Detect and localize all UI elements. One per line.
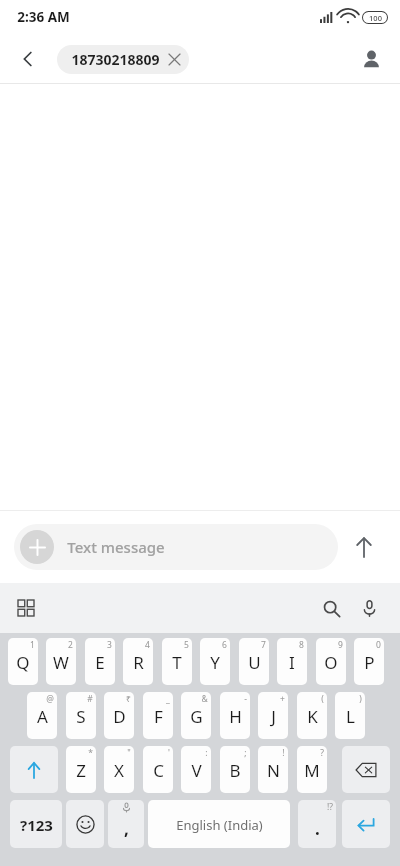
button[interactable]: !? <box>298 800 336 848</box>
button[interactable]: ?123 <box>10 800 62 848</box>
button[interactable]: + <box>258 692 288 739</box>
button[interactable]: ' <box>143 746 173 793</box>
staticText: 4 <box>145 639 150 651</box>
staticText: K <box>307 705 318 728</box>
button[interactable]: _ <box>143 692 173 739</box>
button[interactable]: 8 <box>277 638 307 685</box>
button[interactable]: Contacts <box>351 39 391 79</box>
button[interactable]: , <box>108 800 144 848</box>
button[interactable]: ; <box>220 746 250 793</box>
button[interactable]: & <box>181 692 211 739</box>
button[interactable]: 9 <box>316 638 346 685</box>
staticText: English (India) <box>176 816 263 834</box>
staticText: 18730218809 <box>71 50 160 69</box>
staticText: @ <box>46 693 54 705</box>
staticText: J <box>271 705 276 728</box>
button[interactable]: Search <box>312 589 350 627</box>
other: Remove <box>169 54 180 65</box>
staticText: , <box>124 817 129 840</box>
button[interactable]: 5 <box>162 638 192 685</box>
staticText: 5 <box>184 639 189 651</box>
staticText: * <box>88 747 93 759</box>
staticText: 1 <box>30 639 35 651</box>
button[interactable]: ) <box>335 692 365 739</box>
staticText: F <box>154 705 163 728</box>
button[interactable]: : <box>181 746 211 793</box>
staticText: C <box>153 759 164 782</box>
button[interactable]: 4 <box>123 638 153 685</box>
button[interactable]: 0 <box>354 638 384 685</box>
button[interactable]: Shift <box>10 746 58 793</box>
staticText: ) <box>359 693 362 705</box>
staticText: # <box>87 693 93 705</box>
staticText: Z <box>76 759 86 782</box>
staticText: U <box>248 651 261 674</box>
staticText: I <box>289 651 295 674</box>
staticText: Y <box>210 651 220 674</box>
staticText: !? <box>327 801 333 813</box>
staticText: - <box>244 693 247 705</box>
staticText: O <box>324 651 338 674</box>
staticText: A <box>37 705 48 728</box>
staticText: 0 <box>376 639 381 651</box>
staticText: Q <box>16 651 30 674</box>
button[interactable]: Attach <box>20 530 54 564</box>
staticText: ? <box>320 747 324 759</box>
button[interactable]: 1 <box>8 638 38 685</box>
button[interactable]: Toolbox <box>8 590 44 626</box>
staticText: B <box>229 759 241 782</box>
staticText: P <box>364 651 375 674</box>
staticText: . <box>315 817 320 840</box>
staticText: D <box>113 705 126 728</box>
staticText: X <box>114 759 124 782</box>
button[interactable]: 18730218809 <box>57 45 189 74</box>
button[interactable]: Enter <box>342 800 390 848</box>
button[interactable]: - <box>220 692 250 739</box>
button[interactable]: English (India) <box>148 800 290 848</box>
button[interactable]: Backspace <box>342 746 390 793</box>
button[interactable]: ? <box>297 746 327 793</box>
staticText: + <box>280 693 285 705</box>
staticText: 9 <box>338 639 343 651</box>
button[interactable]: Send <box>338 521 390 573</box>
button[interactable]: # <box>66 692 96 739</box>
staticText: L <box>346 705 355 728</box>
staticText: 2 <box>68 639 73 651</box>
button[interactable]: Attach <box>14 524 338 570</box>
staticText: ?123 <box>20 815 53 835</box>
staticText: 7 <box>261 639 266 651</box>
button[interactable]: 7 <box>239 638 269 685</box>
button[interactable]: 2 <box>46 638 76 685</box>
staticText: N <box>267 759 280 782</box>
button[interactable]: ₹ <box>104 692 134 739</box>
staticText: " <box>127 747 131 759</box>
staticText: ₹ <box>126 693 131 705</box>
staticText: 8 <box>299 639 304 651</box>
button[interactable]: " <box>104 746 134 793</box>
staticText: H <box>229 705 242 728</box>
staticText: V <box>191 759 202 782</box>
staticText: E <box>95 651 105 674</box>
staticText: M <box>304 759 320 782</box>
staticText: 3 <box>107 639 112 651</box>
staticText: 100 <box>369 13 382 23</box>
staticText: ; <box>244 747 247 759</box>
staticText: & <box>201 693 208 705</box>
button[interactable]: 3 <box>85 638 115 685</box>
button[interactable]: ( <box>297 692 327 739</box>
button[interactable]: ! <box>258 746 288 793</box>
button[interactable]: @ <box>27 692 57 739</box>
button[interactable]: 6 <box>200 638 230 685</box>
staticText: ' <box>168 747 170 759</box>
staticText: 6 <box>222 639 227 651</box>
staticText: : <box>205 747 208 759</box>
staticText: R <box>133 651 144 674</box>
button[interactable]: Emoji <box>66 800 104 848</box>
button[interactable]: Voice input <box>350 589 388 627</box>
button[interactable]: Back <box>8 39 48 79</box>
staticText: ! <box>282 747 285 759</box>
staticText: G <box>190 705 203 728</box>
staticText: Text message <box>67 537 165 557</box>
button[interactable]: * <box>66 746 96 793</box>
staticText: 2:36 AM <box>17 8 70 26</box>
